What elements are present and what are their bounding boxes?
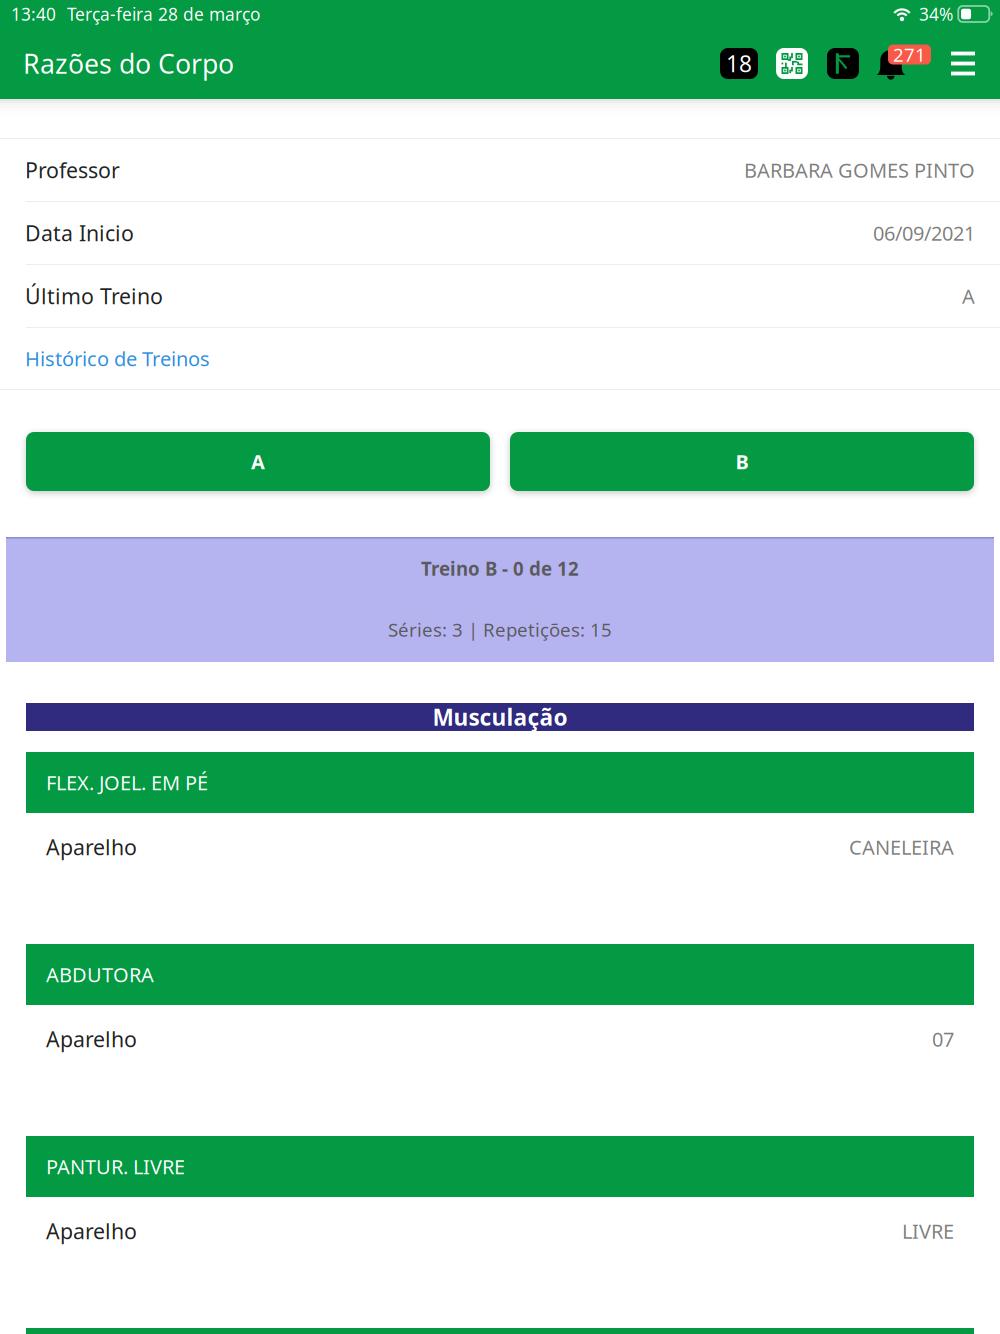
button[interactable]: Notificações: 271 <box>859 43 928 83</box>
button[interactable]: Dias restantes: 18 <box>720 48 758 79</box>
staticText: LIVRE <box>902 1218 954 1244</box>
staticText: 34% <box>919 2 953 25</box>
staticText: Razões do Corpo <box>23 46 234 81</box>
staticText: Terça-feira 28 de março <box>67 2 260 25</box>
button[interactable]: Histórico de Treinos <box>0 328 1000 389</box>
button[interactable]: Professor <box>0 139 1000 202</box>
button[interactable]: Último Treino <box>0 265 1000 328</box>
button[interactable]: Menu <box>928 43 983 83</box>
staticText: 07 <box>932 1026 954 1052</box>
staticText: 06/09/2021 <box>873 220 975 246</box>
staticText: Data Inicio <box>25 219 134 247</box>
staticText: A <box>251 448 265 475</box>
staticText: Último Treino <box>25 282 163 310</box>
staticText: Histórico de Treinos <box>25 345 210 372</box>
staticText: Aparelho <box>46 1025 137 1053</box>
staticText: B <box>735 448 748 475</box>
staticText: FLEX. JOEL. EM PÉ <box>46 769 208 796</box>
staticText: A <box>962 283 975 309</box>
staticText: Treino B - 0 de 12 <box>421 556 579 581</box>
staticText: 13:40 <box>11 2 56 25</box>
button[interactable]: A <box>26 432 490 491</box>
button[interactable]: QR Code <box>758 48 808 79</box>
staticText: Professor <box>25 156 120 184</box>
staticText: Aparelho <box>46 1217 137 1245</box>
staticText: Aparelho <box>46 833 137 861</box>
staticText: Musculação <box>432 702 567 732</box>
staticText: 18 <box>726 48 752 78</box>
staticText: Séries: 3 | Repetições: 15 <box>388 617 612 642</box>
staticText: PANTUR. LIVRE <box>46 1153 185 1180</box>
button[interactable]: B <box>510 432 974 491</box>
staticText: CANELEIRA <box>849 834 954 860</box>
button[interactable]: Data Inicio <box>0 202 1000 265</box>
staticText: 271 <box>893 42 926 67</box>
staticText: BARBARA GOMES PINTO <box>744 157 975 183</box>
staticText: ABDUTORA <box>46 961 154 988</box>
button[interactable]: Catraca <box>808 48 859 79</box>
